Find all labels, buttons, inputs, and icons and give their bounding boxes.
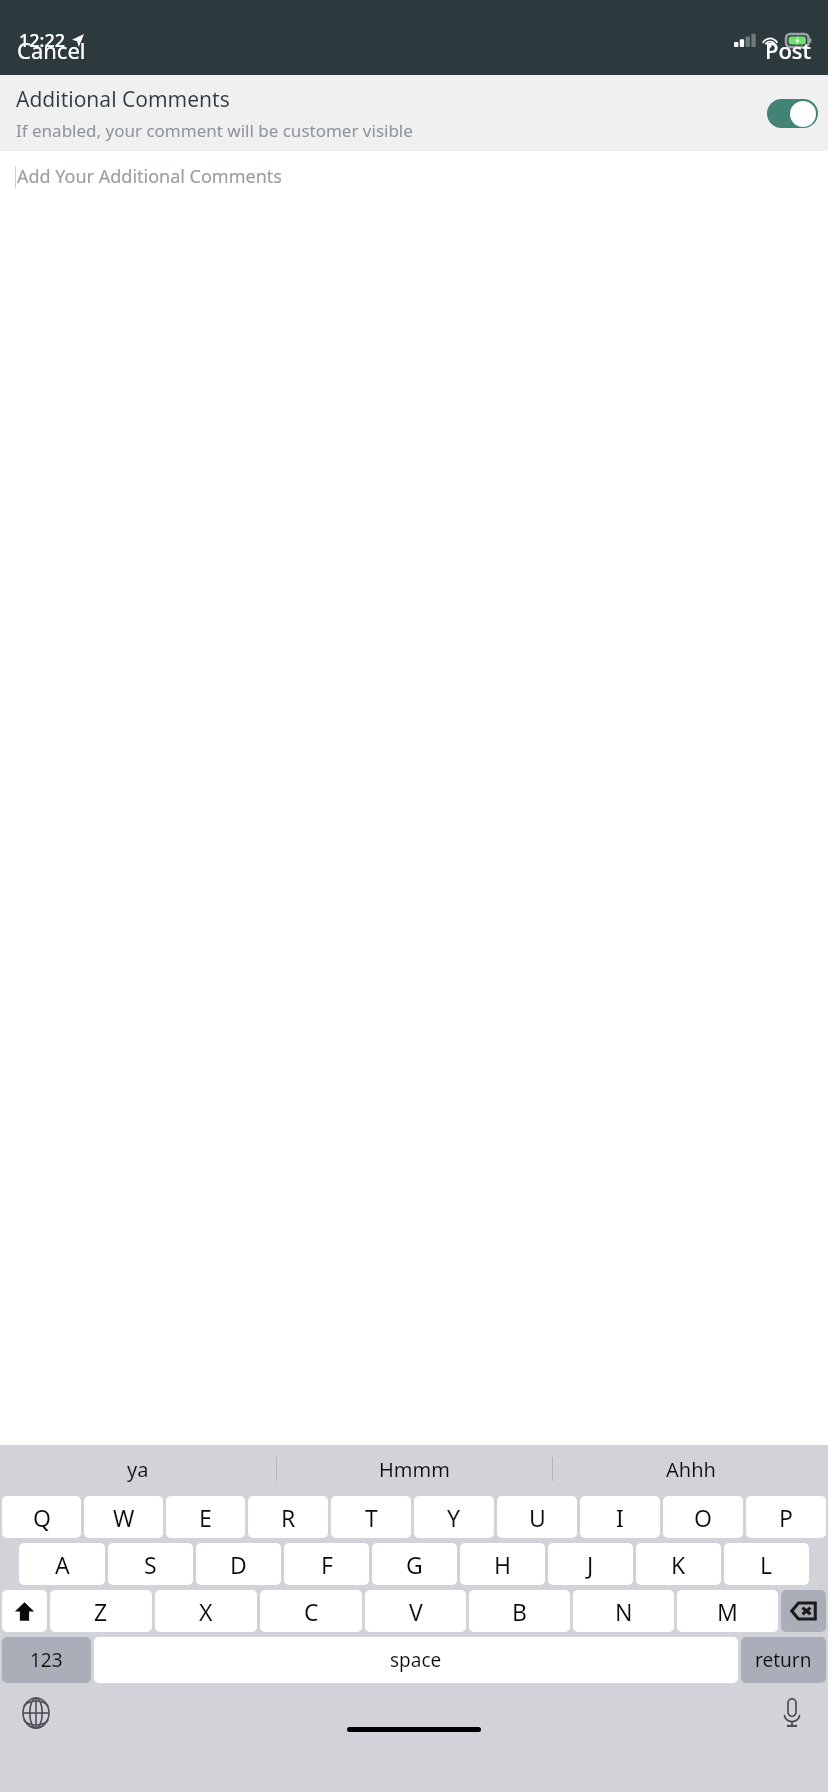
staticText: Additional Comments xyxy=(16,85,230,114)
button[interactable]: C xyxy=(260,1590,362,1632)
staticText: E xyxy=(199,1502,212,1533)
staticText: U xyxy=(529,1502,546,1533)
staticText: B xyxy=(512,1596,527,1627)
button[interactable]: I xyxy=(580,1496,660,1538)
staticText: Ahhh xyxy=(666,1456,716,1483)
button[interactable]: U xyxy=(497,1496,577,1538)
staticText: 12:22 xyxy=(19,28,66,53)
staticText: I xyxy=(616,1502,624,1533)
button[interactable]: ya xyxy=(0,1445,276,1493)
staticText: K xyxy=(671,1549,686,1580)
staticText: space xyxy=(390,1647,442,1673)
button[interactable]: T xyxy=(331,1496,411,1538)
staticText: Q xyxy=(33,1502,51,1533)
staticText: A xyxy=(55,1549,70,1580)
button[interactable]: Q xyxy=(2,1496,81,1538)
staticText: C xyxy=(304,1596,319,1627)
button[interactable]: Ahhh xyxy=(553,1445,828,1493)
button[interactable]: H xyxy=(460,1543,545,1585)
button[interactable]: Voice input xyxy=(770,1691,814,1735)
staticText: O xyxy=(694,1502,712,1533)
button[interactable]: Y xyxy=(414,1496,494,1538)
button[interactable]: return xyxy=(741,1637,826,1683)
staticText: X xyxy=(199,1596,213,1627)
button[interactable]: Hmmm xyxy=(277,1445,552,1493)
staticText: S xyxy=(144,1549,157,1580)
button[interactable]: O xyxy=(663,1496,743,1538)
staticText: F xyxy=(321,1549,333,1580)
staticText: Add Your Additional Comments xyxy=(17,164,282,189)
staticText: return xyxy=(755,1647,812,1673)
button[interactable]: space xyxy=(94,1637,738,1683)
button[interactable]: F xyxy=(284,1543,369,1585)
staticText: N xyxy=(615,1596,633,1627)
button[interactable]: A xyxy=(19,1543,105,1585)
staticText: Post xyxy=(765,35,811,65)
button[interactable]: P xyxy=(746,1496,826,1538)
staticText: G xyxy=(406,1549,423,1580)
button[interactable]: W xyxy=(84,1496,163,1538)
button[interactable]: Backspace xyxy=(781,1590,826,1632)
staticText: Z xyxy=(94,1596,108,1627)
button[interactable]: X xyxy=(155,1590,257,1632)
staticText: ya xyxy=(127,1456,149,1483)
button[interactable]: Additional Comments toggle xyxy=(767,99,818,128)
button[interactable]: Shift xyxy=(2,1590,47,1632)
button[interactable]: B xyxy=(469,1590,570,1632)
button[interactable]: S xyxy=(108,1543,193,1585)
button[interactable]: J xyxy=(548,1543,633,1585)
button[interactable]: M xyxy=(677,1590,778,1632)
staticText: R xyxy=(281,1502,296,1533)
button[interactable]: Z xyxy=(50,1590,152,1632)
staticText: V xyxy=(409,1596,423,1627)
staticText: Hmmm xyxy=(379,1456,450,1483)
staticText: J xyxy=(587,1549,594,1580)
button[interactable]: E xyxy=(166,1496,245,1538)
staticText: H xyxy=(494,1549,512,1580)
button[interactable]: V xyxy=(365,1590,466,1632)
staticText: D xyxy=(230,1549,247,1580)
staticText: Cancel xyxy=(17,35,86,65)
staticText: Y xyxy=(447,1502,461,1533)
staticText: P xyxy=(779,1502,793,1533)
button[interactable]: L xyxy=(724,1543,809,1585)
button[interactable]: Post xyxy=(753,29,828,75)
button[interactable]: D xyxy=(196,1543,281,1585)
button[interactable]: R xyxy=(248,1496,328,1538)
staticText: M xyxy=(717,1596,738,1627)
staticText: T xyxy=(365,1502,378,1533)
button[interactable]: 123 xyxy=(2,1637,91,1683)
button[interactable]: Add Your Additional Comments xyxy=(0,151,828,811)
staticText: If enabled, your comment will be custome… xyxy=(16,119,413,142)
staticText: W xyxy=(113,1502,135,1533)
staticText: 123 xyxy=(30,1647,63,1673)
button[interactable]: G xyxy=(372,1543,457,1585)
button[interactable]: Change keyboard language xyxy=(14,1691,58,1735)
button[interactable]: N xyxy=(573,1590,674,1632)
staticText: L xyxy=(760,1549,773,1580)
button[interactable]: Cancel xyxy=(0,29,98,75)
button[interactable]: K xyxy=(636,1543,721,1585)
